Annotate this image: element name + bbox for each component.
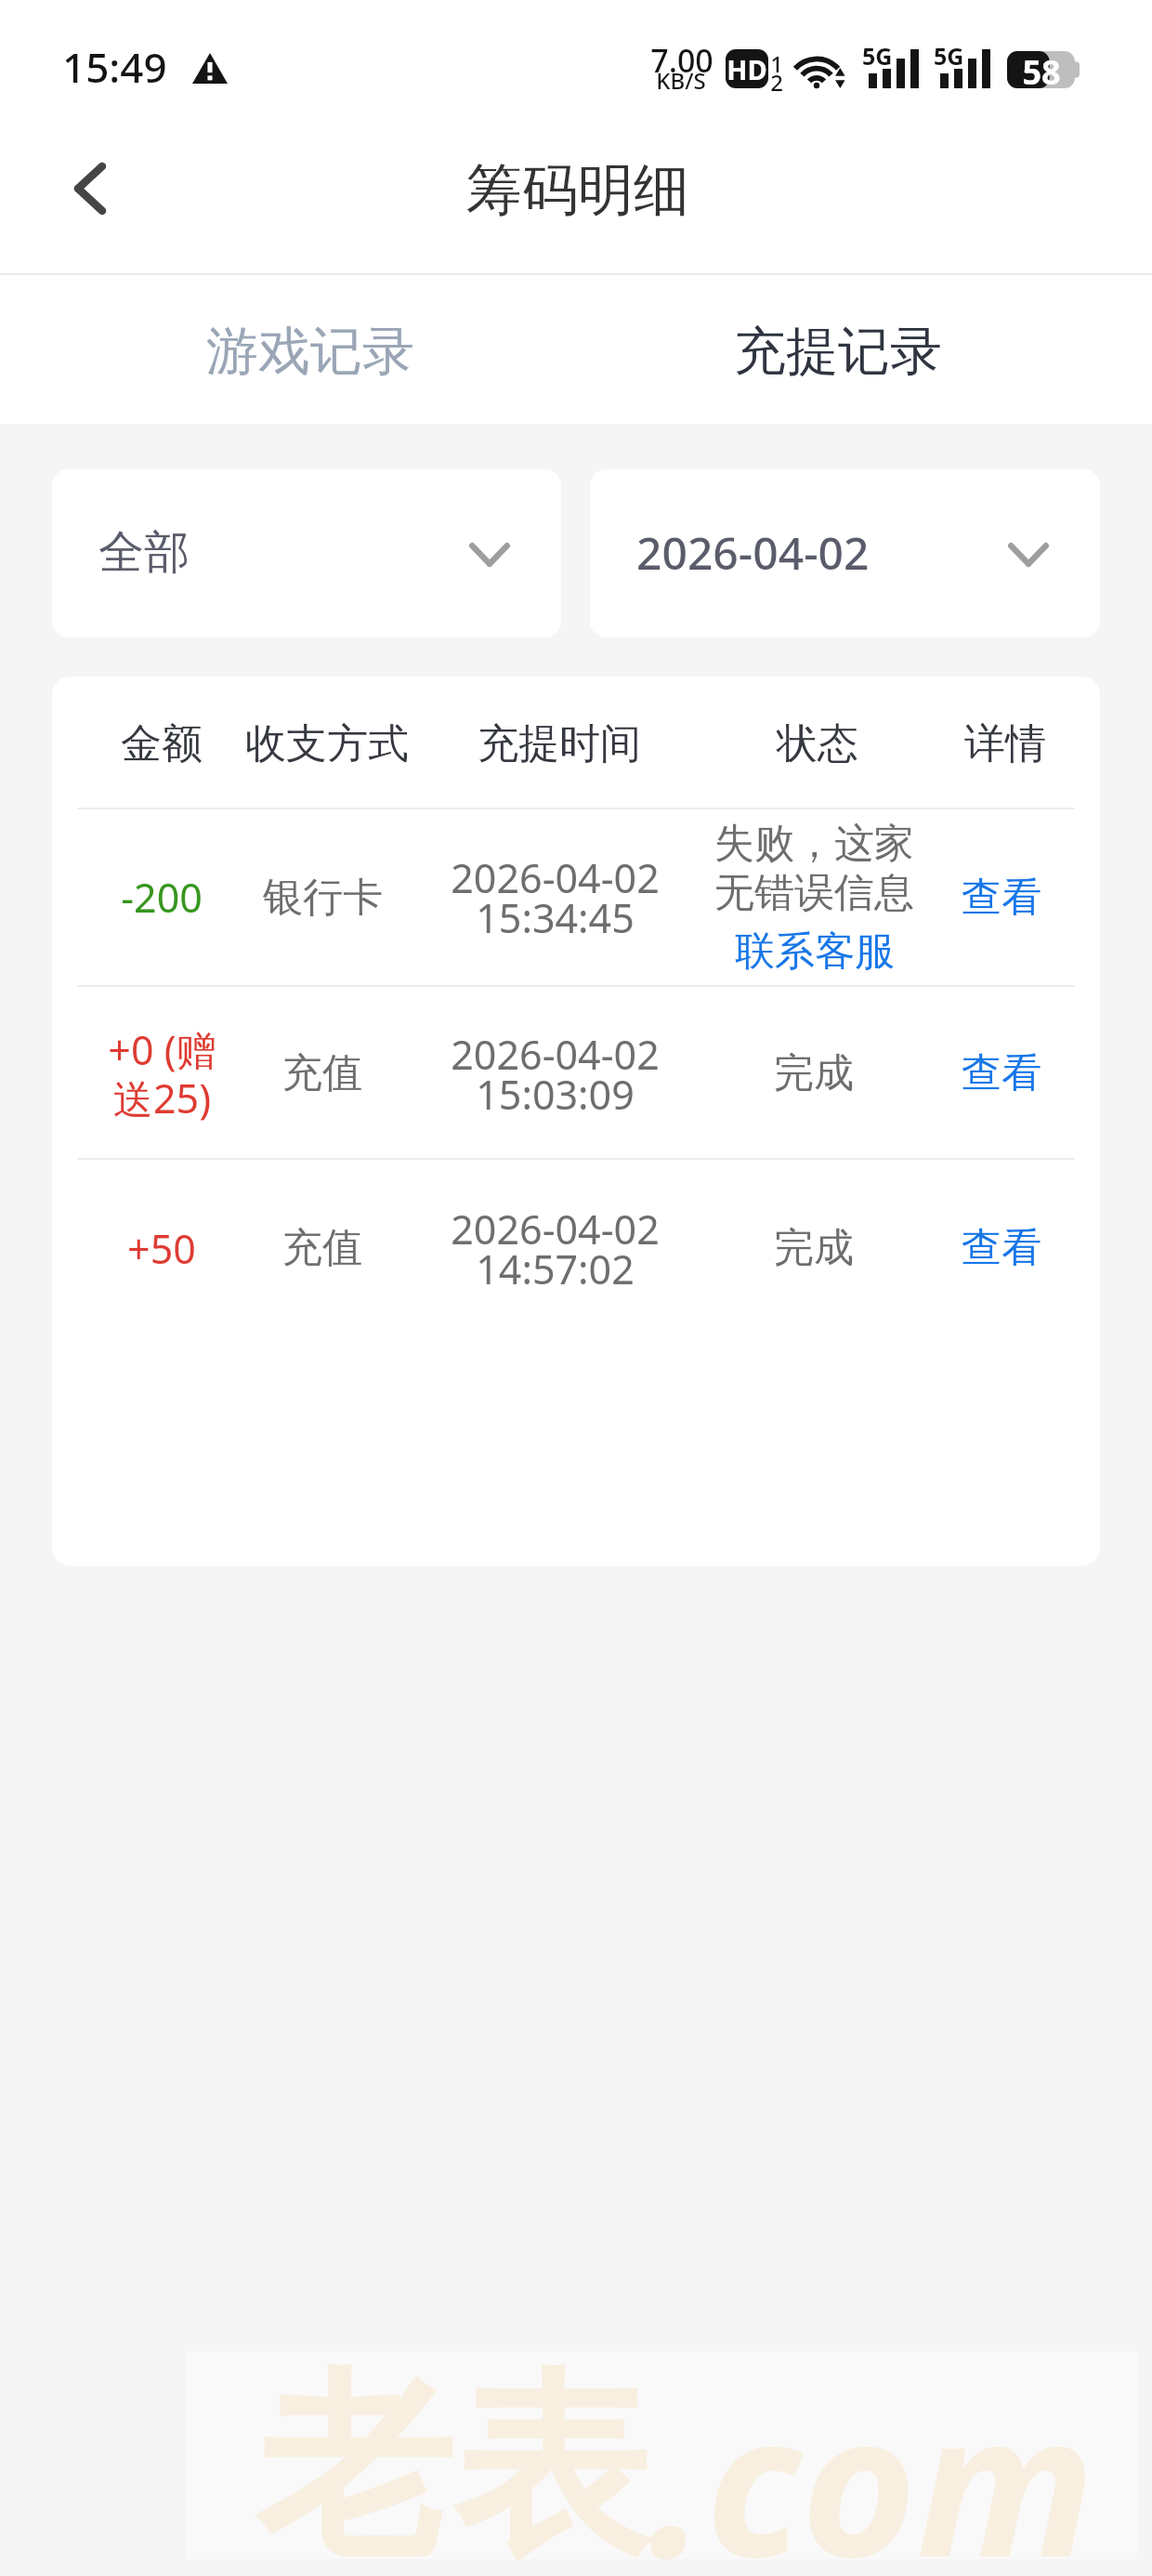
- staticText: 2026-04-02 15:34:45: [451, 850, 660, 944]
- staticText: .com: [649, 2346, 1095, 2576]
- button[interactable]: +50: [52, 1160, 1100, 1333]
- staticText: 充提记录: [734, 319, 942, 385]
- staticText: 老表: [255, 2346, 649, 2576]
- staticText: 1: [769, 48, 784, 79]
- button[interactable]: 游戏记录: [134, 275, 487, 424]
- staticText: 游戏记录: [206, 319, 414, 385]
- staticText: 2: [769, 67, 784, 98]
- staticText: 查看: [962, 1048, 1041, 1098]
- button[interactable]: 查看: [913, 1036, 1090, 1111]
- staticText: -200: [121, 870, 203, 925]
- staticText: 查看: [962, 1223, 1041, 1273]
- staticText: 58: [1016, 49, 1067, 86]
- button[interactable]: 全部: [52, 469, 561, 637]
- staticText: 失败，这家 无错误信息: [714, 819, 914, 918]
- staticText: 联系客服: [735, 927, 895, 977]
- staticText: 全部: [98, 524, 190, 582]
- button[interactable]: 查看: [913, 861, 1090, 935]
- staticText: 5G: [862, 40, 899, 72]
- staticText: KB/S: [650, 65, 712, 96]
- staticText: 详情: [964, 718, 1046, 769]
- button[interactable]: 充提记录: [661, 275, 1015, 424]
- staticText: 充值: [282, 1048, 362, 1098]
- staticText: 金额: [121, 718, 203, 769]
- staticText: 完成: [774, 1223, 854, 1273]
- staticText: 银行卡: [263, 873, 383, 923]
- button[interactable]: -200: [52, 809, 1100, 985]
- staticText: 状态: [777, 718, 858, 769]
- button[interactable]: Back: [33, 141, 124, 232]
- button[interactable]: +0 (赠 送25): [52, 987, 1100, 1158]
- staticText: 2026-04-02: [636, 522, 870, 583]
- staticText: 充提时间: [478, 718, 641, 769]
- staticText: 2026-04-02 14:57:02: [451, 1202, 660, 1295]
- staticText: 2026-04-02 15:03:09: [451, 1027, 660, 1121]
- button[interactable]: 查看: [913, 1211, 1090, 1285]
- staticText: 收支方式: [245, 718, 409, 769]
- staticText: 查看: [962, 873, 1041, 923]
- staticText: 15:49: [62, 39, 167, 95]
- staticText: 7.00: [650, 39, 712, 82]
- staticText: HD: [727, 51, 767, 87]
- staticText: 5G: [934, 40, 971, 72]
- staticText: +50: [127, 1221, 196, 1276]
- staticText: +0 (赠 送25): [108, 1022, 216, 1125]
- button[interactable]: 联系客服: [735, 927, 895, 977]
- staticText: 充值: [282, 1223, 362, 1273]
- button[interactable]: 2026-04-02: [590, 469, 1100, 637]
- staticText: 筹码明细: [2, 155, 1152, 226]
- staticText: 完成: [774, 1048, 854, 1098]
